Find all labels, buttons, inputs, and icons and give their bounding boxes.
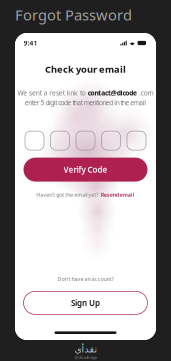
button[interactable]: Verification code digit (76, 131, 95, 150)
staticText: 9:41 (23, 39, 37, 47)
button[interactable]: Verification code digit (101, 131, 120, 150)
staticText: @dicode.app (74, 355, 96, 360)
button[interactable]: Verification code digit (50, 131, 69, 150)
staticText: We sent a reset link to (17, 88, 88, 97)
staticText: Haven't got the email yet? (36, 191, 98, 198)
staticText: enter 5 digit code that mentioned in the… (25, 98, 146, 107)
staticText: Forgot Password (15, 5, 132, 24)
staticText: نقدأي (74, 344, 97, 355)
staticText: Sign Up (71, 298, 100, 308)
button[interactable]: Verify Code (23, 158, 147, 182)
button[interactable]: Verification code digit (25, 131, 44, 150)
staticText: Check your email (45, 63, 126, 75)
button[interactable]: Resend email (101, 191, 135, 198)
button[interactable]: Sign Up (23, 291, 147, 314)
staticText: contact@dicode (88, 88, 137, 97)
staticText: Verify Code (63, 164, 107, 175)
staticText: .com (137, 88, 154, 97)
staticText: Resend email (101, 191, 135, 198)
staticText: Don't have an account? (57, 275, 113, 282)
button[interactable]: Verification code digit (127, 131, 146, 150)
